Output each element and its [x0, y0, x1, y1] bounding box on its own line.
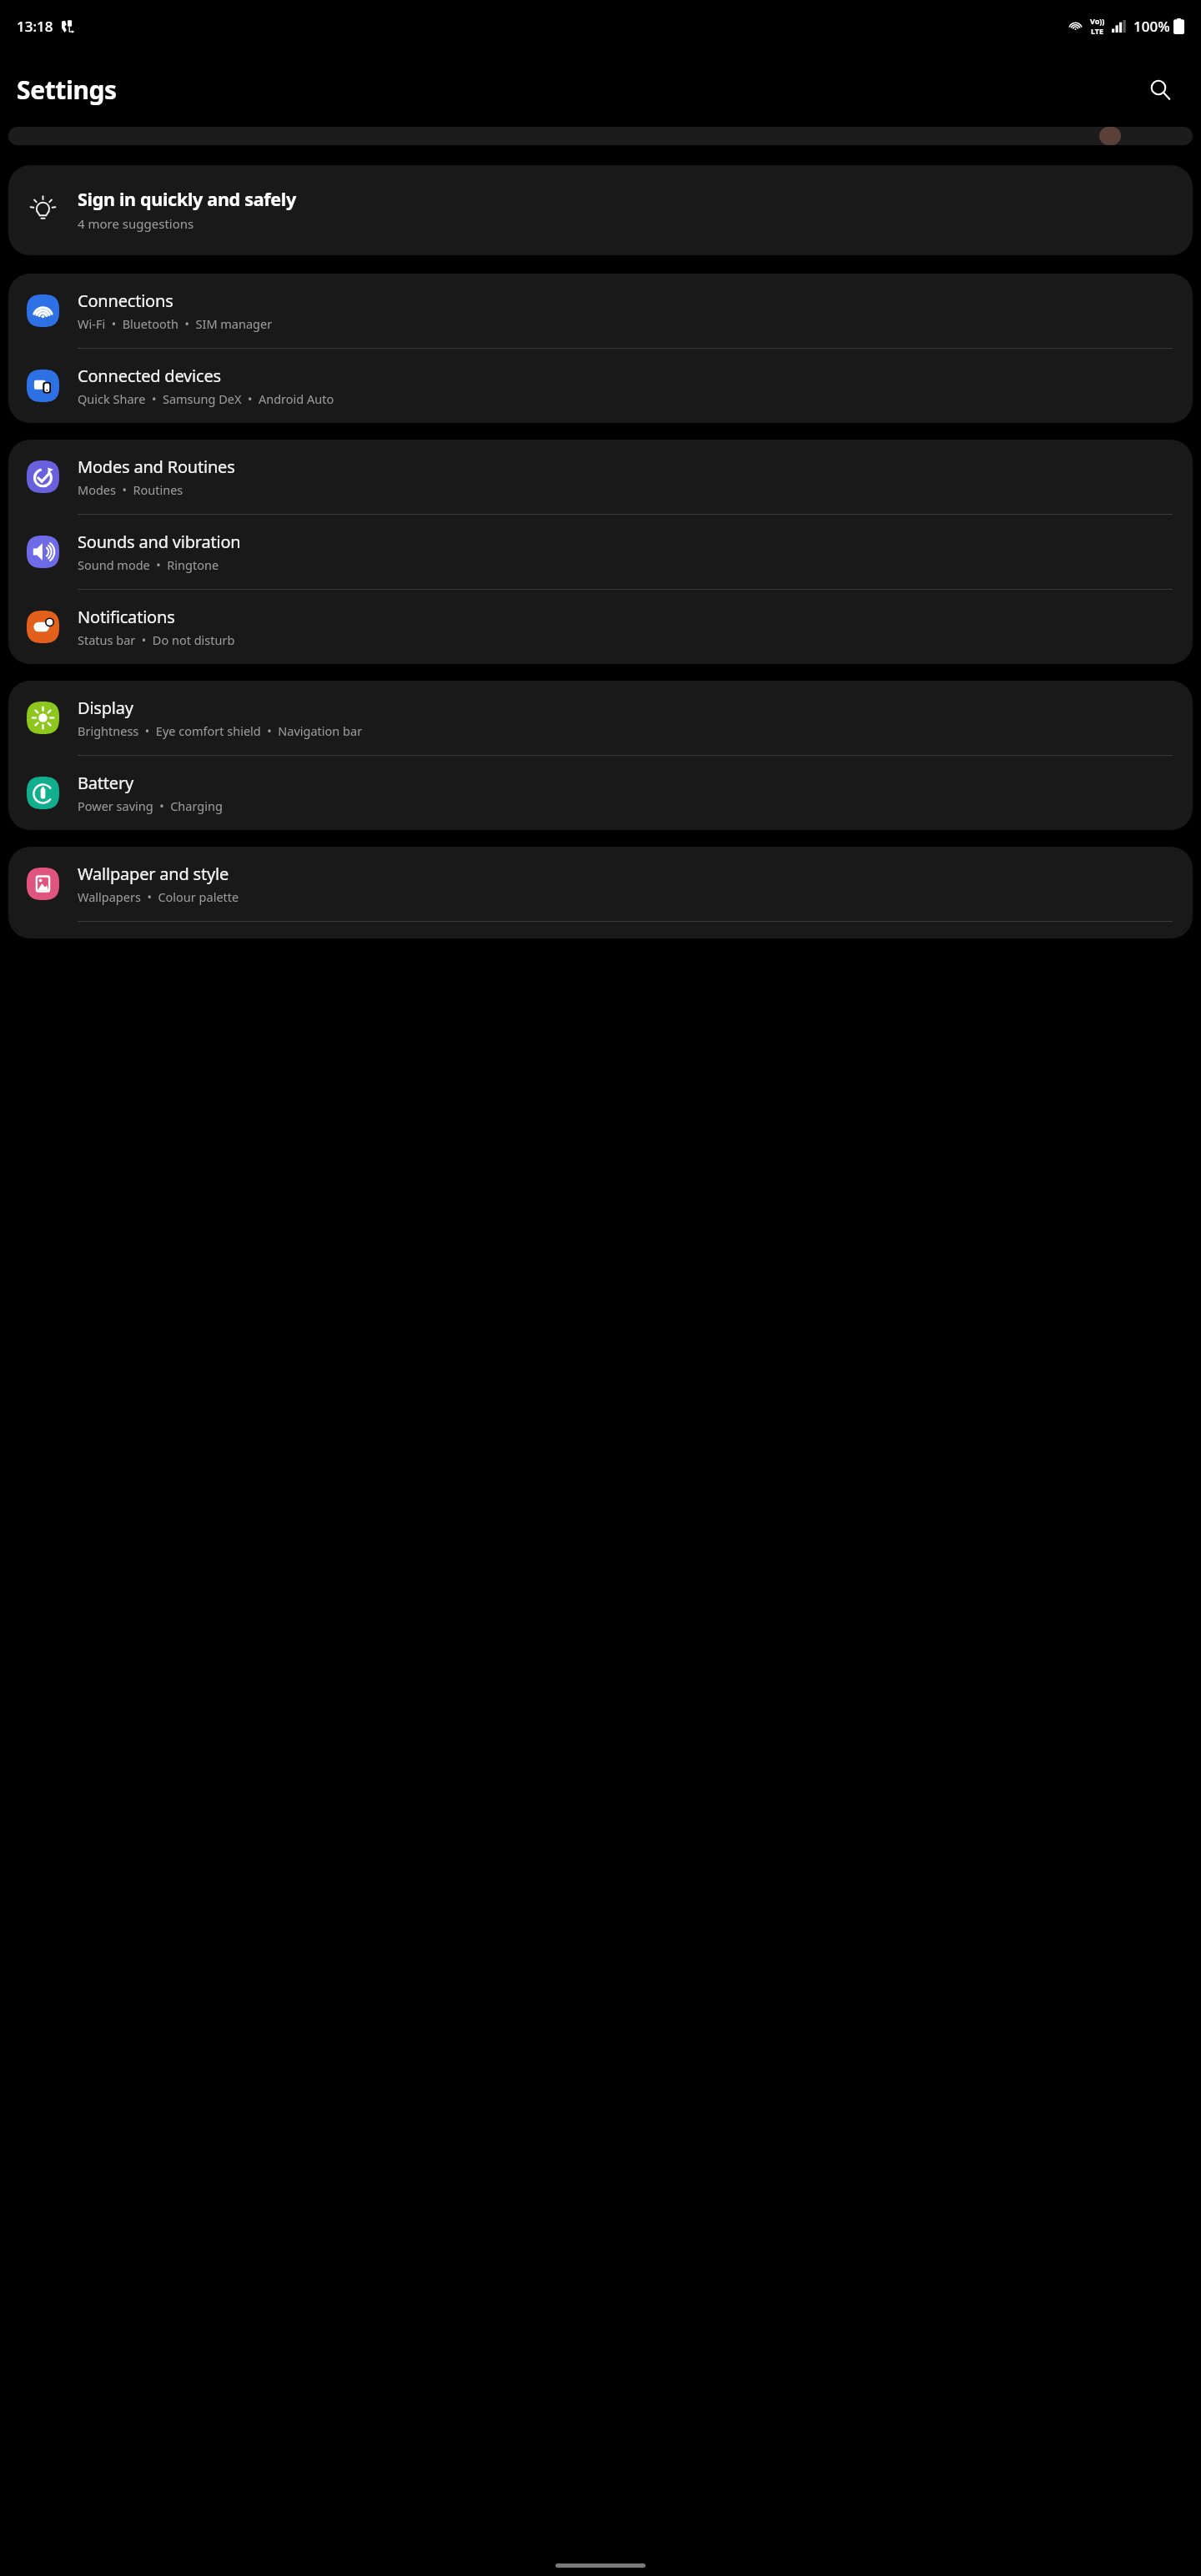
staticText: Wallpaper and style — [78, 863, 229, 885]
staticText: 100% — [1133, 17, 1170, 36]
staticText: Power saving • Charging — [78, 797, 223, 814]
staticText: Settings — [17, 73, 117, 107]
staticText: Brightness • Eye comfort shield • Naviga… — [78, 722, 363, 739]
button[interactable]: Display — [8, 681, 1193, 756]
staticText: Battery — [78, 772, 133, 794]
button[interactable]: Search — [1141, 70, 1179, 108]
staticText: Modes and Routines — [78, 455, 235, 478]
button[interactable]: Modes and Routines — [8, 440, 1193, 515]
staticText: Wallpapers • Colour palette — [78, 888, 239, 905]
staticText: LTE — [1091, 26, 1104, 36]
button[interactable]: Wallpaper and style — [8, 847, 1193, 922]
staticText: Status bar • Do not disturb — [78, 631, 235, 648]
button[interactable] — [8, 127, 1193, 145]
staticText: 4 more suggestions — [78, 215, 194, 232]
button[interactable]: Sounds and vibration — [8, 515, 1193, 590]
staticText: Sign in quickly and safely — [78, 187, 296, 211]
staticText: Notifications — [78, 606, 175, 628]
staticText: 13:18 — [17, 17, 53, 36]
staticText: Connections — [78, 289, 173, 312]
button[interactable]: Battery — [8, 756, 1193, 830]
staticText: Wi-Fi • Bluetooth • SIM manager — [78, 315, 273, 332]
staticText: Sound mode • Ringtone — [78, 556, 219, 573]
staticText: Modes • Routines — [78, 481, 183, 498]
staticText: Sounds and vibration — [78, 531, 241, 553]
button[interactable]: Connections — [8, 274, 1193, 349]
button[interactable]: Sign in quickly and safely — [8, 165, 1193, 255]
staticText: Connected devices — [78, 365, 221, 387]
staticText: Quick Share • Samsung DeX • Android Auto — [78, 390, 334, 407]
staticText: Vo)) — [1090, 16, 1105, 26]
button[interactable]: Connected devices — [8, 349, 1193, 423]
staticText: Display — [78, 697, 133, 719]
button[interactable]: Notifications — [8, 590, 1193, 664]
